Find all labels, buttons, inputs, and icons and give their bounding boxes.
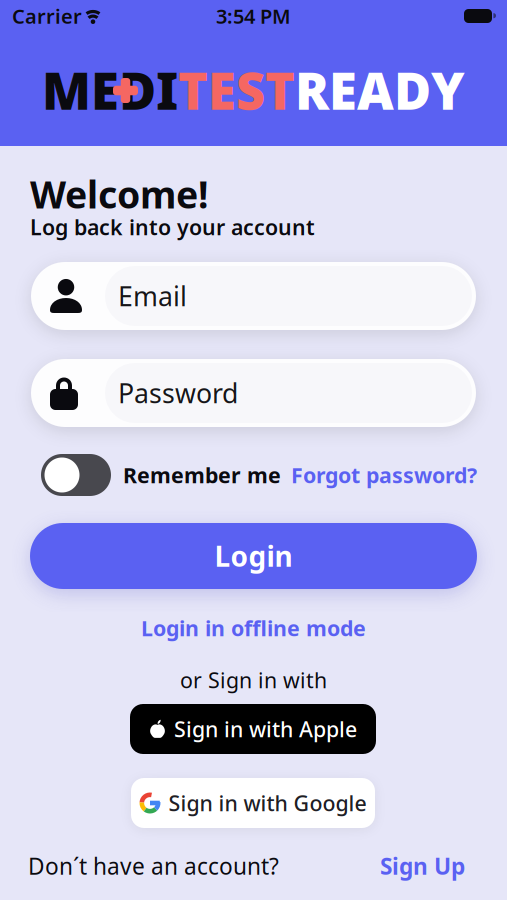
button[interactable]: Forgot password?	[291, 461, 477, 489]
staticText: 3:54 PM	[216, 3, 291, 29]
staticText: Sign in with Apple	[174, 715, 357, 743]
button[interactable]: Remember me	[41, 454, 111, 496]
staticText: Email	[118, 278, 187, 314]
button[interactable]: Password	[31, 359, 476, 427]
staticText: ME	[42, 56, 119, 124]
staticText: Forgot password?	[291, 461, 477, 489]
button[interactable]: Sign Up	[380, 851, 465, 881]
staticText: Login in offline mode	[141, 614, 366, 642]
staticText: Log back into your account	[30, 213, 315, 241]
staticText: Don´t have an account?	[28, 851, 279, 881]
staticText: TEST	[178, 56, 295, 124]
staticText: Password	[118, 375, 238, 411]
button[interactable]: Login in offline mode	[141, 614, 366, 642]
staticText: Sign Up	[380, 851, 465, 881]
staticText: READY	[295, 56, 465, 124]
staticText: Login	[214, 537, 292, 575]
button[interactable]: Sign in with Google	[131, 778, 375, 828]
staticText: D	[119, 56, 156, 124]
button[interactable]: Sign in with Apple	[130, 704, 376, 754]
button[interactable]: Login	[30, 523, 477, 589]
staticText: Welcome!	[30, 169, 209, 219]
staticText: I	[156, 56, 178, 124]
staticText: or Sign in with	[180, 666, 327, 694]
staticText: Sign in with Google	[168, 789, 366, 817]
staticText: Remember me	[123, 461, 281, 489]
staticText: Carrier	[12, 3, 82, 29]
button[interactable]: Email	[31, 262, 476, 330]
